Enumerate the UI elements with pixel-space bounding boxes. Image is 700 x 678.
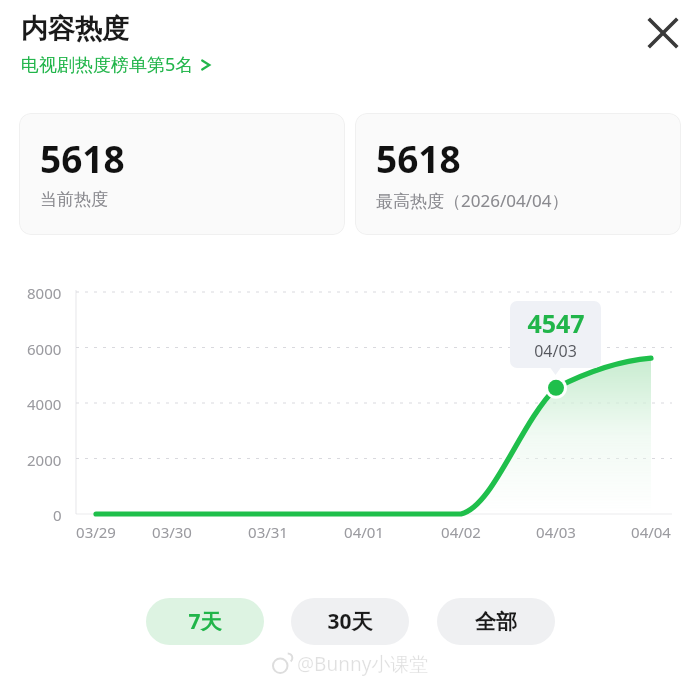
button[interactable]: 30天 <box>291 598 409 645</box>
staticText: 7天 <box>188 607 222 636</box>
button[interactable]: Close <box>640 10 686 56</box>
staticText: 电视剧热度榜单第5名 <box>21 52 194 77</box>
staticText: 4000 <box>27 394 62 414</box>
staticText: 03/31 <box>248 522 288 542</box>
staticText: 最高热度（2026/04/04） <box>376 189 569 212</box>
staticText: 04/04 <box>631 522 671 542</box>
staticText: 内容热度 <box>21 12 129 46</box>
button[interactable]: 全部 <box>437 598 555 645</box>
staticText: @Bunny小课堂 <box>297 651 429 677</box>
staticText: 0 <box>53 505 62 525</box>
staticText: 5618 <box>40 133 125 183</box>
staticText: 6000 <box>27 339 62 359</box>
staticText: 30天 <box>327 607 373 636</box>
staticText: 5618 <box>376 133 461 183</box>
staticText: 8000 <box>27 283 62 303</box>
staticText: 2000 <box>27 450 62 470</box>
button[interactable]: 7天 <box>146 598 264 645</box>
staticText: 03/29 <box>76 522 116 542</box>
staticText: 04/01 <box>344 522 384 542</box>
staticText: 04/03 <box>534 340 577 362</box>
button[interactable]: 5618 <box>355 113 681 235</box>
staticText: 04/03 <box>536 522 576 542</box>
staticText: 04/02 <box>441 522 481 542</box>
button[interactable]: 5618 <box>19 113 345 235</box>
staticText: 当前热度 <box>40 189 108 210</box>
staticText: 全部 <box>475 609 517 635</box>
staticText: 03/30 <box>152 522 192 542</box>
staticText: 4547 <box>527 306 585 340</box>
button[interactable]: 电视剧热度榜单第5名 <box>21 52 212 77</box>
